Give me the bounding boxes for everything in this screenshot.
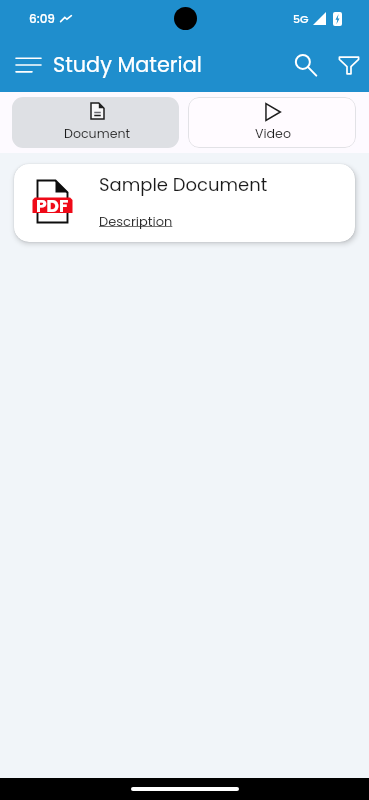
staticText: Study Material	[53, 50, 202, 79]
button[interactable]: Document	[12, 97, 179, 148]
staticText: Description	[99, 212, 173, 230]
staticText: 5G	[293, 11, 309, 26]
button[interactable]: Video	[188, 97, 356, 148]
staticText: PDF	[36, 194, 69, 218]
staticText: Sample Document	[99, 172, 268, 197]
staticText: Video	[255, 125, 291, 143]
staticText: Document	[64, 125, 131, 143]
staticText: 6:09	[29, 10, 55, 27]
button[interactable]: Menu	[7, 45, 47, 85]
button[interactable]: PDF	[14, 164, 355, 242]
button[interactable]: Filter	[327, 43, 369, 87]
button[interactable]: Search	[283, 43, 327, 87]
